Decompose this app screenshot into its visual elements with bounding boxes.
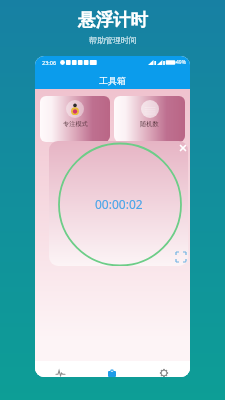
button[interactable]: Close [179,144,187,152]
staticText: 随机数 [140,120,159,128]
button[interactable]: Resize [176,252,186,262]
staticText: 悬浮计时 [78,9,148,31]
button[interactable]: Toolbox [86,368,138,377]
button[interactable]: Activity [35,368,86,377]
button[interactable]: 专注模式 [40,96,110,142]
staticText: 49% [176,59,186,66]
staticText: 帮助管理时间 [89,35,137,45]
staticText: 专注模式 [63,120,88,128]
button[interactable]: 随机数 [114,96,185,142]
button[interactable]: 00:00:02 [49,141,188,266]
staticText: 00:00:02 [95,196,143,212]
button[interactable]: Settings [138,368,190,377]
staticText: 23:06 [42,59,57,66]
staticText: 工具箱 [99,75,126,86]
